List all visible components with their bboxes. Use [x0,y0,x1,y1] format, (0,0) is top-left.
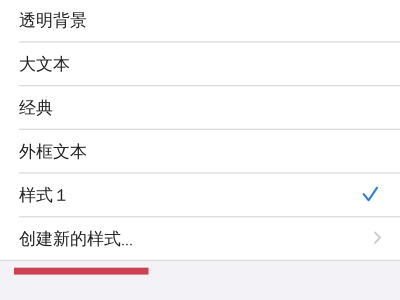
staticText: 经典 [19,97,53,118]
staticText: 创建新的样式... [19,228,133,249]
button[interactable]: 样式 1 [0,173,400,216]
staticText: 大文本 [19,53,70,75]
button[interactable]: 透明背景 [0,0,400,42]
button[interactable]: 经典 [0,85,400,129]
button[interactable]: 创建新的样式... [0,216,400,260]
button[interactable]: 大文本 [0,42,400,85]
staticText: 透明背景 [19,10,87,31]
staticText: 样式 1 [19,185,66,206]
staticText: 外框文本 [19,141,87,162]
button[interactable]: 外框文本 [0,129,400,173]
